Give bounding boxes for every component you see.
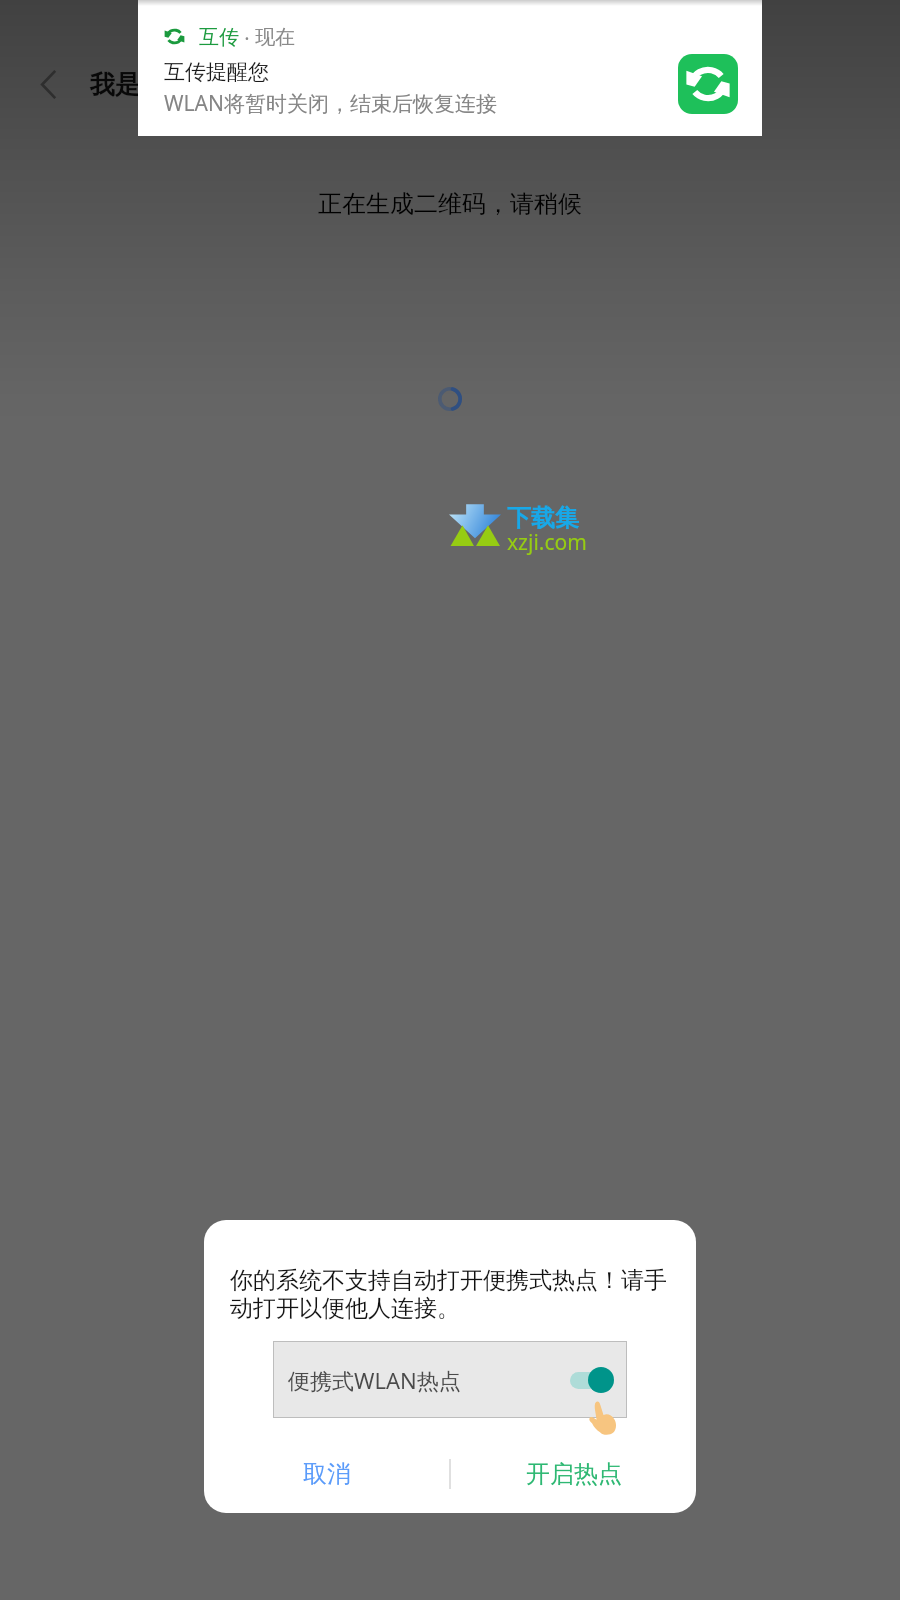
button[interactable]: 互传 [138, 0, 762, 136]
button[interactable]: 开启热点 [451, 1441, 696, 1507]
staticText: 下载集 [507, 503, 579, 533]
button[interactable]: Portable WLAN hotspot toggle, on [570, 1367, 611, 1393]
button[interactable]: 取消 [204, 1441, 449, 1507]
staticText: 现在 [255, 25, 295, 47]
staticText: · [239, 25, 255, 47]
staticText: 正在生成二维码，请稍候 [0, 189, 900, 219]
staticText: 互传 [199, 25, 239, 47]
button[interactable]: 便携式WLAN热点 [273, 1341, 627, 1418]
staticText: WLAN将暂时关闭，结束后恢复连接 [164, 89, 497, 118]
button[interactable]: Back [0, 42, 96, 126]
staticText: xzji.com [507, 528, 587, 557]
staticText: 取消 [303, 1459, 351, 1489]
staticText: 开启热点 [526, 1459, 622, 1489]
staticText: 便携式WLAN热点 [288, 1365, 461, 1395]
staticText: 你的系统不支持自动打开便携式热点！请手动打开以便他人连接。 [230, 1266, 676, 1323]
staticText: 我是发送方 [90, 69, 215, 100]
staticText: 互传提醒您 [164, 59, 269, 85]
